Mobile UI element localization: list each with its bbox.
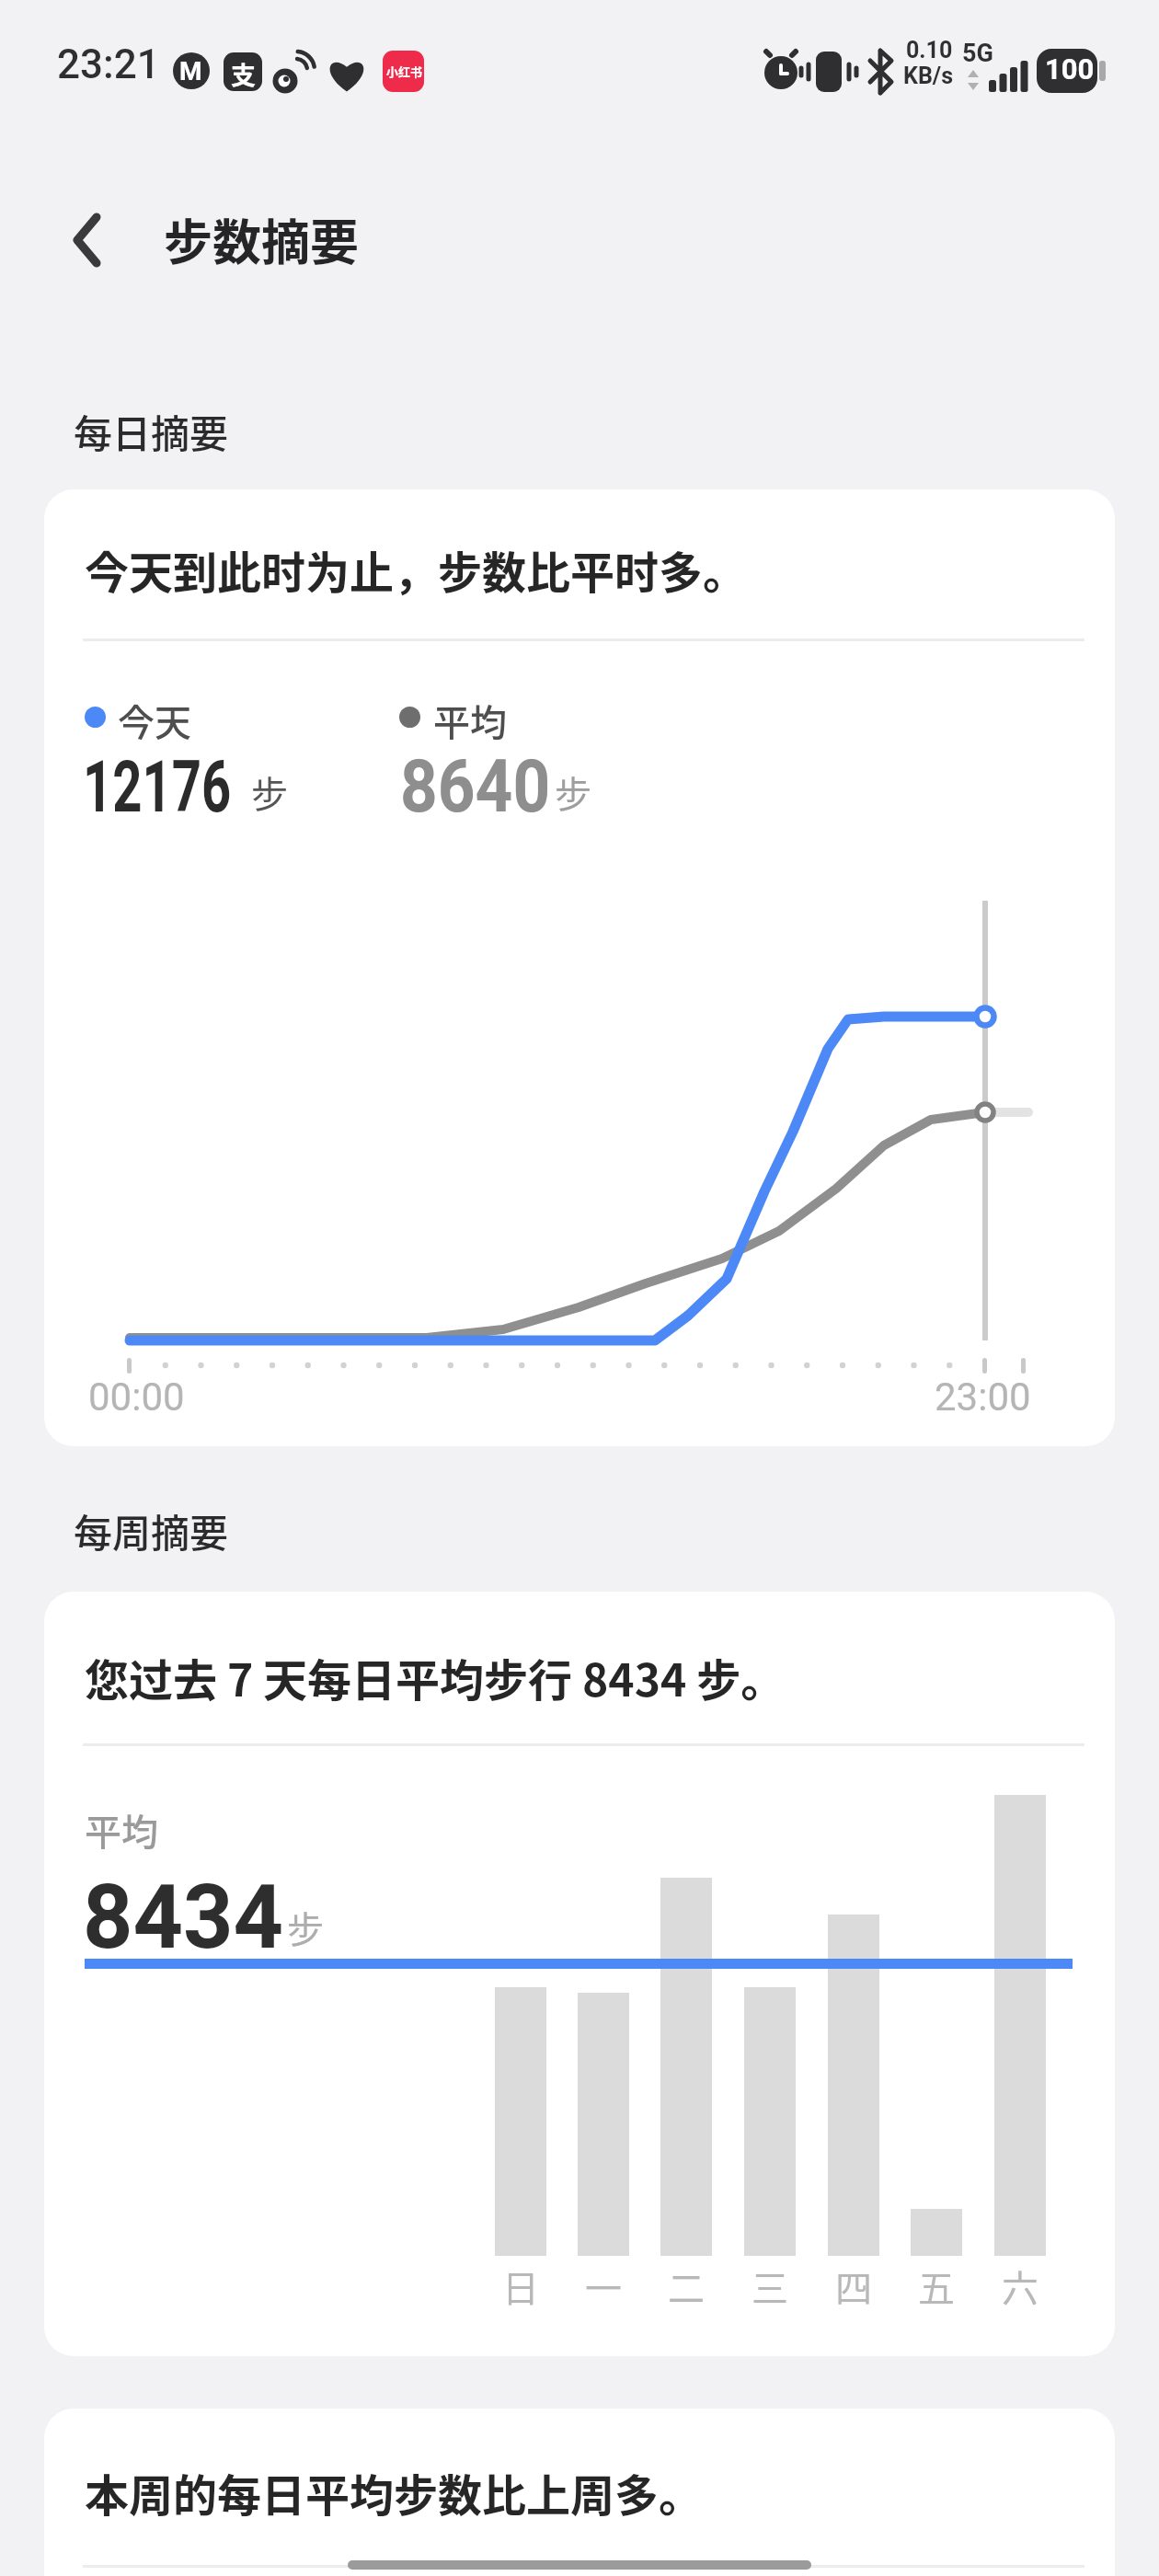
staticText: 今天到此时为止，步数比平时多。 [85, 537, 748, 602]
staticText: M [179, 56, 202, 86]
staticText: 0.10 [906, 37, 953, 63]
staticText: 8434 [83, 1865, 284, 1970]
button[interactable]: 您过去 7 天每日平均步行 8434 步。 [44, 1592, 1115, 2356]
staticText: 步 [251, 765, 288, 819]
staticText: 步 [287, 1901, 324, 1954]
staticText: 23:21 [57, 40, 160, 88]
button[interactable] [63, 208, 118, 272]
staticText: 5G [962, 39, 993, 68]
staticText: 100 [1045, 52, 1095, 86]
staticText: 23:00 [935, 1374, 1031, 1420]
staticText: 支 [231, 56, 256, 92]
staticText: 您过去 7 天每日平均步行 8434 步。 [85, 1645, 786, 1709]
staticText: 平均 [85, 1803, 158, 1857]
staticText: 步数摘要 [164, 204, 359, 275]
staticText: 12176 [83, 745, 231, 829]
staticText: 00:00 [88, 1374, 185, 1420]
staticText: 步 [555, 765, 591, 819]
staticText: 今天 [118, 694, 191, 747]
staticText: 每日摘要 [74, 403, 229, 459]
staticText: KB/s [903, 63, 954, 89]
staticText: 8640 [400, 744, 551, 830]
staticText: 四 [835, 2260, 872, 2313]
staticText: 三 [752, 2260, 788, 2313]
staticText: 本周的每日平均步数比上周多。 [85, 2460, 704, 2524]
staticText: 二 [668, 2260, 705, 2313]
staticText: 一 [585, 2260, 622, 2313]
staticText: 日 [502, 2260, 539, 2313]
staticText: 每周摘要 [74, 1502, 229, 1558]
staticText: 六 [1002, 2260, 1039, 2313]
button[interactable]: 本周的每日平均步数比上周多。 [44, 2409, 1115, 2576]
staticText: 小红书 [386, 63, 423, 80]
button[interactable]: 今天到此时为止，步数比平时多。 [44, 489, 1115, 1446]
staticText: 五 [918, 2260, 955, 2313]
staticText: 平均 [433, 694, 507, 747]
